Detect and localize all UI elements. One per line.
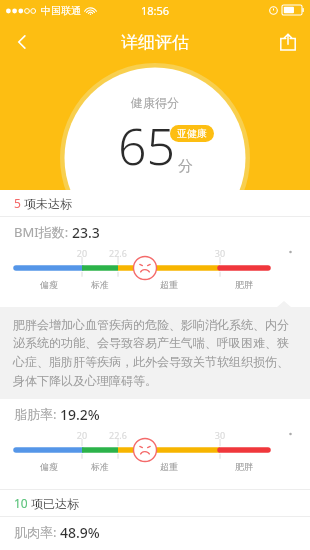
- staticText: 偏瘦: [31, 279, 67, 290]
- staticText: 10: [14, 495, 28, 511]
- staticText: 分: [178, 157, 193, 176]
- staticText: 30: [206, 247, 234, 259]
- button[interactable]: 亚健康: [170, 125, 214, 142]
- staticText: 肥胖: [226, 461, 262, 472]
- staticText: 亚健康: [177, 127, 207, 140]
- staticText: 详细评估: [121, 32, 189, 53]
- button[interactable]: Share: [266, 20, 310, 64]
- staticText: 20: [68, 429, 96, 441]
- button[interactable]: 5: [0, 190, 310, 216]
- staticText: 肥胖会增加心血管疾病的危险、影响消化系统、内分泌系统的功能、会导致容易产生气喘、…: [13, 317, 297, 389]
- staticText: 22.6: [104, 247, 132, 259]
- staticText: 肌肉率:: [14, 523, 60, 541]
- staticText: 标准: [82, 461, 118, 472]
- staticText: 22.6: [104, 429, 132, 441]
- button[interactable]: Back: [0, 20, 44, 64]
- staticText: 偏瘦: [31, 461, 67, 472]
- staticText: 超重: [151, 461, 187, 472]
- staticText: 健康得分: [131, 95, 179, 110]
- staticText: 项已达标: [31, 496, 79, 511]
- button[interactable]: 10: [0, 490, 310, 516]
- staticText: BMI指数:: [14, 223, 72, 241]
- staticText: 19.2%: [60, 405, 100, 424]
- staticText: 超重: [151, 279, 187, 290]
- staticText: 中国联通: [41, 4, 81, 17]
- staticText: 18:56: [141, 3, 170, 18]
- staticText: 23.3: [72, 223, 100, 242]
- staticText: 脂肪率:: [14, 405, 60, 423]
- staticText: 20: [68, 247, 96, 259]
- staticText: 肥胖: [226, 279, 262, 290]
- staticText: 5: [14, 195, 21, 211]
- staticText: 65: [118, 112, 176, 180]
- staticText: 30: [206, 429, 234, 441]
- staticText: 48.9%: [60, 523, 100, 542]
- staticText: 项未达标: [24, 196, 72, 211]
- staticText: 标准: [82, 279, 118, 290]
